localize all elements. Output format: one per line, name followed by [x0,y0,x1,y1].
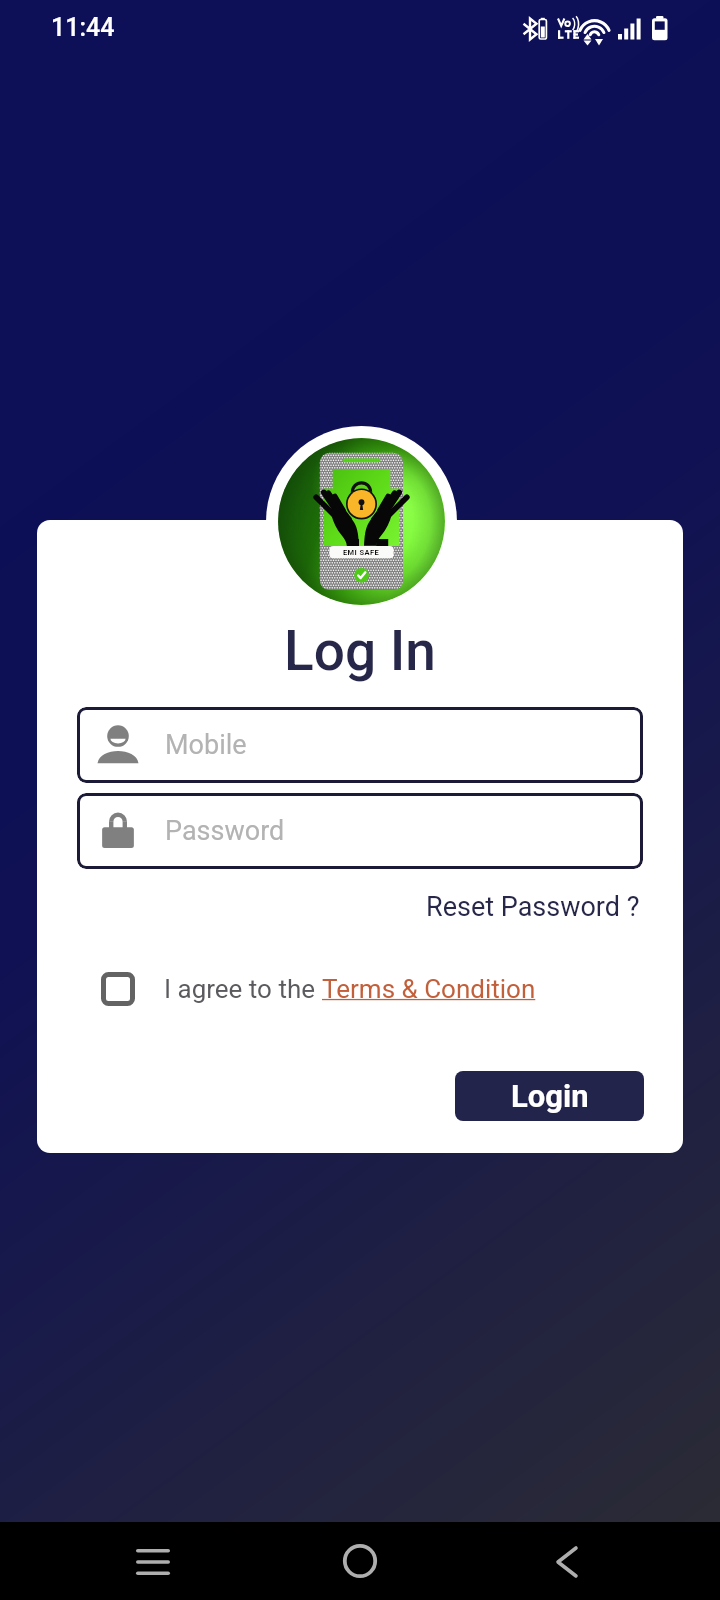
button[interactable]: Reset Password ? [424,888,642,926]
staticText: Terms & Condition [322,974,536,1004]
staticText: 11:44 [51,13,115,42]
button[interactable]: Home [327,1528,393,1594]
staticText: Mobile [165,729,247,761]
staticText: I agree to the [164,974,322,1004]
staticText: Password [165,815,285,847]
staticText: Log In [37,619,683,683]
staticText: EMI SAFE [343,548,380,557]
staticText: Reset Password ? [426,891,640,923]
button[interactable]: Recent apps [120,1529,186,1595]
button[interactable]: Back [534,1529,600,1595]
button[interactable]: Agree to terms checkbox [97,968,139,1010]
button[interactable]: Mobile [77,707,643,783]
button[interactable]: Terms & Condition [322,974,536,1004]
button[interactable]: Password [77,793,643,869]
staticText: Login [511,1078,589,1114]
button[interactable]: Login [455,1071,644,1121]
